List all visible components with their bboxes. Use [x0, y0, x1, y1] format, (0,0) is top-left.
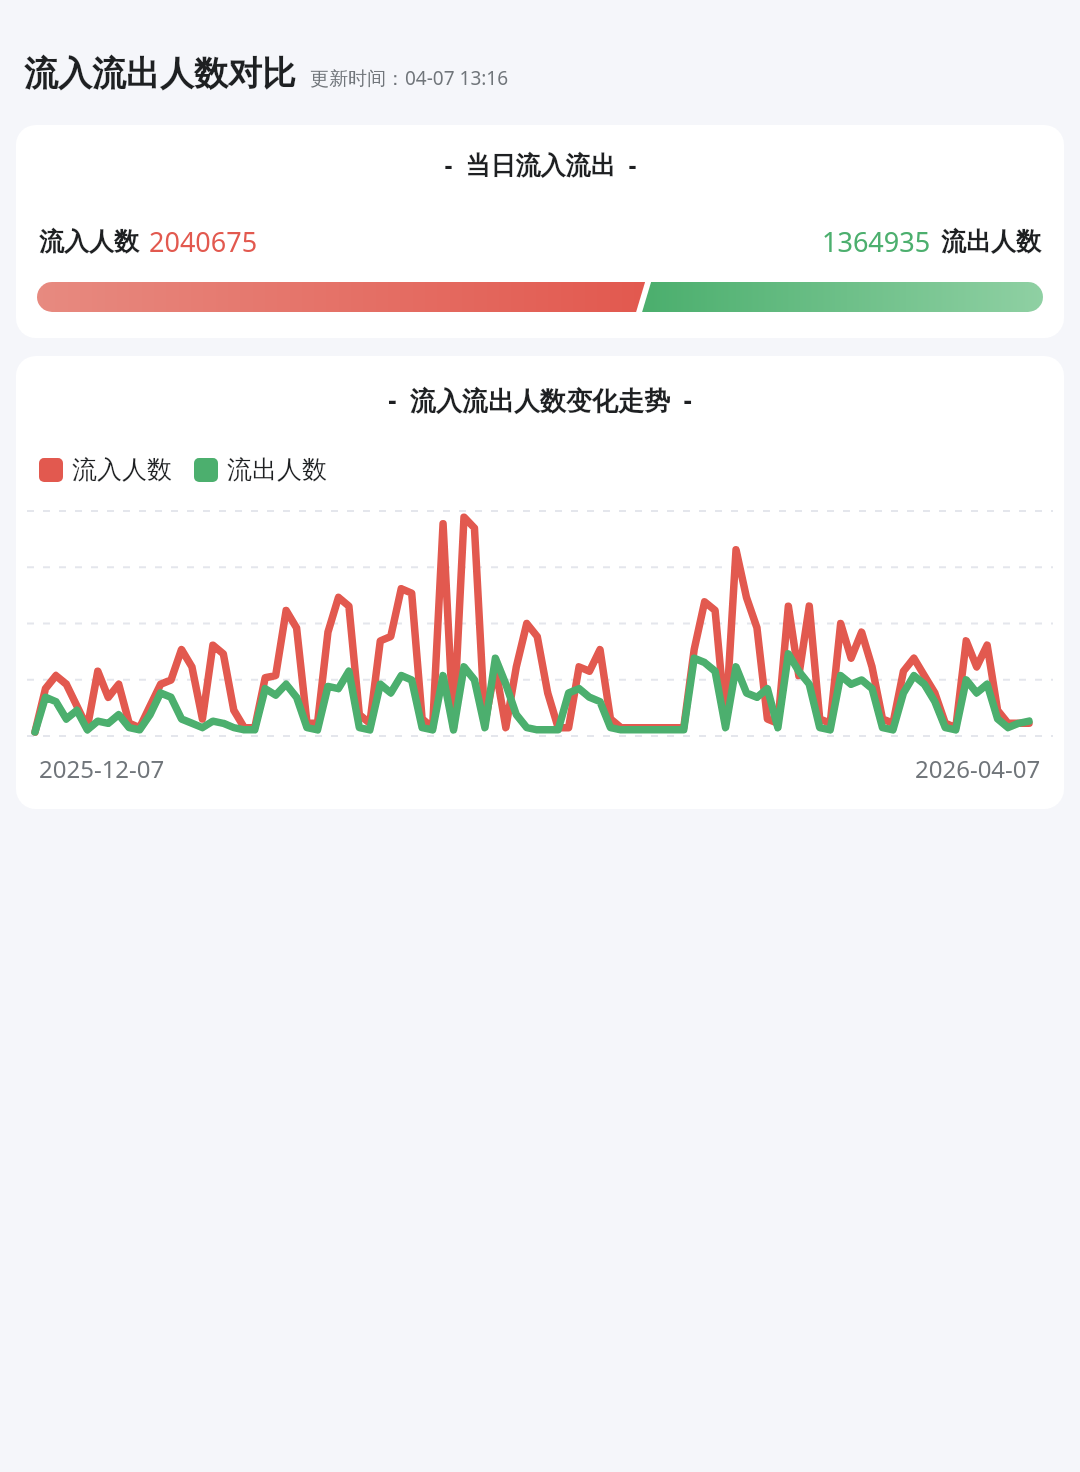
- staticText: 2025-12-07: [39, 752, 165, 785]
- button[interactable]: - 流入流出人数变化走势 -: [16, 356, 1064, 809]
- other: 流入流出人数变化走势图: [27, 511, 1053, 736]
- staticText: 流入人数: [72, 454, 172, 485]
- button[interactable]: - 当日流入流出 -: [16, 125, 1064, 338]
- staticText: 流出人数: [941, 226, 1041, 257]
- button[interactable]: 流入人数: [39, 454, 327, 485]
- staticText: 流入流出人数对比: [24, 52, 296, 95]
- staticText: - 流入流出人数变化走势 -: [388, 382, 692, 418]
- staticText: 2026-04-07: [915, 752, 1041, 785]
- staticText: 流出人数: [227, 454, 327, 485]
- staticText: 更新时间：04-07 13:16: [310, 65, 509, 91]
- staticText: - 当日流入流出 -: [444, 147, 637, 181]
- staticText: 流入人数: [39, 226, 139, 257]
- staticText: 1364935: [822, 223, 931, 260]
- staticText: 2040675: [149, 223, 258, 260]
